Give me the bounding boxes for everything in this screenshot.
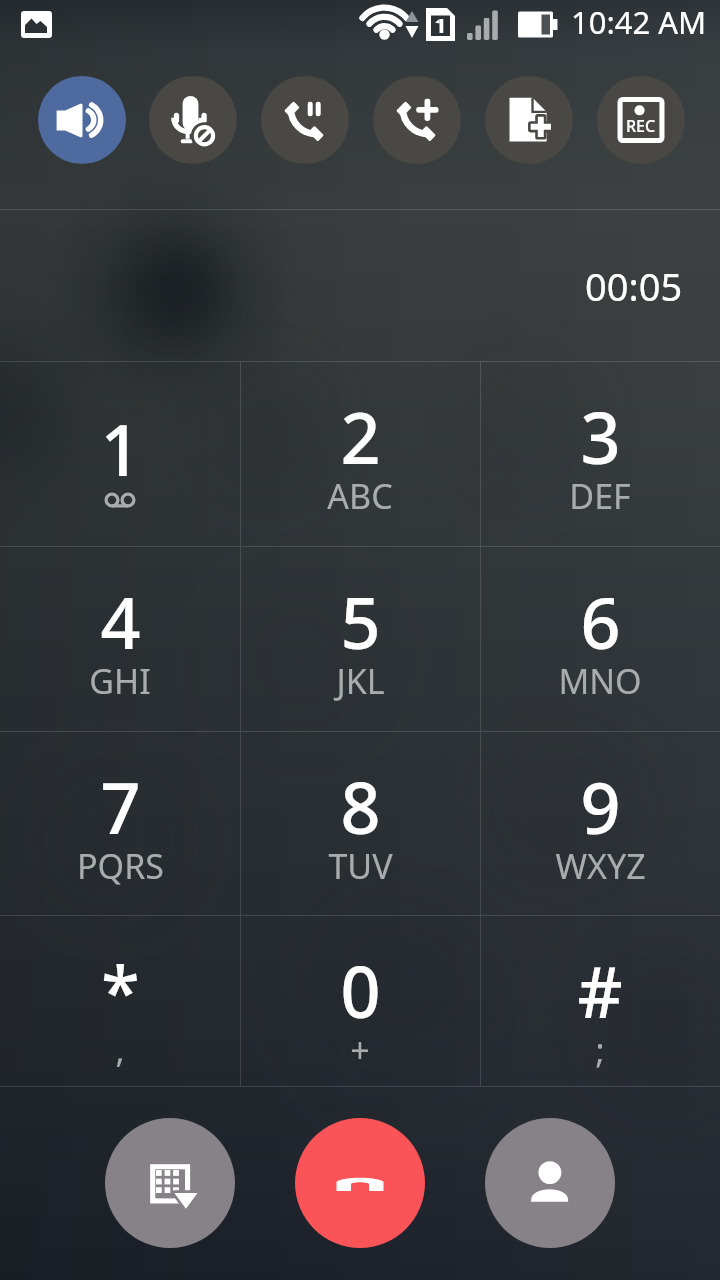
button[interactable]: 4 [0,547,240,731]
staticText: 1 [100,401,141,496]
staticText: 5 [340,574,381,669]
staticText: ABC [327,473,393,519]
staticText: 0 [340,943,381,1038]
staticText: 6 [580,574,621,669]
button[interactable]: Mute [149,76,237,164]
button[interactable]: 2 [240,362,480,546]
button[interactable]: * [0,916,240,1086]
staticText: 3 [580,389,621,484]
button[interactable]: End call [295,1118,425,1248]
staticText: 00:05 [585,260,683,312]
staticText: GHI [89,658,151,704]
staticText: DEF [569,473,631,519]
staticText: TUV [328,843,393,889]
button[interactable]: 1 [0,362,240,546]
button[interactable]: Contacts [485,1118,615,1248]
button[interactable]: 0 [240,916,480,1086]
button[interactable]: 3 [480,362,720,546]
button[interactable]: 6 [480,547,720,731]
staticText: 4 [100,574,141,669]
button[interactable]: 9 [480,732,720,915]
staticText: ; [595,1027,605,1073]
button[interactable]: Add note [485,76,573,164]
button[interactable]: Record [597,76,685,164]
button[interactable]: Speaker [38,76,126,164]
button[interactable]: # [480,916,720,1086]
button[interactable]: Add call [373,76,461,164]
staticText: PQRS [77,843,164,889]
staticText: 9 [580,759,621,854]
staticText: REC [626,115,656,137]
button[interactable]: Show keypad [105,1118,235,1248]
staticText: 7 [100,759,141,854]
staticText: 10:42 AM [571,1,707,43]
staticText: JKL [336,658,385,704]
staticText: 8 [340,759,381,854]
button[interactable]: 8 [240,732,480,915]
staticText: WXYZ [555,843,646,889]
staticText: + [350,1027,370,1073]
staticText: * [101,943,140,1038]
button[interactable]: 7 [0,732,240,915]
staticText: # [577,943,623,1038]
button[interactable]: Hold [261,76,349,164]
staticText: , [115,1027,125,1073]
button[interactable]: 5 [240,547,480,731]
staticText: 2 [340,389,381,484]
staticText: MNO [558,658,642,704]
